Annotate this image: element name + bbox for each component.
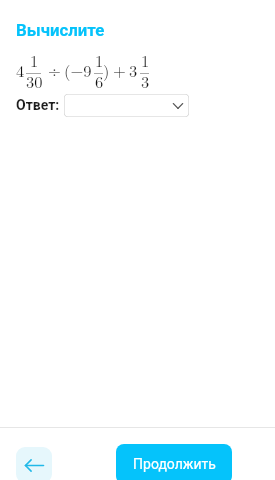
staticText: (−9 bbox=[64, 58, 92, 81]
staticText: Ответ: bbox=[16, 97, 60, 113]
staticText: 3 bbox=[141, 69, 150, 92]
staticText: ) bbox=[103, 58, 110, 81]
staticText: + bbox=[113, 58, 126, 81]
button[interactable]: Назад bbox=[16, 447, 52, 480]
button[interactable]: Продолжить bbox=[116, 444, 232, 480]
staticText: 6 bbox=[95, 69, 104, 92]
staticText: Вычислите bbox=[16, 20, 105, 40]
staticText: 1 bbox=[95, 48, 104, 71]
button[interactable]: Ответ bbox=[64, 94, 189, 117]
staticText: 4 bbox=[16, 58, 25, 81]
staticText: 30 bbox=[26, 69, 43, 92]
staticText: 1 bbox=[30, 48, 39, 71]
staticText: Продолжить bbox=[133, 456, 216, 472]
staticText: 1 bbox=[141, 48, 150, 71]
staticText: ÷ bbox=[48, 58, 61, 81]
staticText: 3 bbox=[129, 58, 138, 81]
